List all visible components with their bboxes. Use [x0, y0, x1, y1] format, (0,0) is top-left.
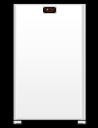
button[interactable]: White smartphone product photo: [0, 0, 98, 128]
